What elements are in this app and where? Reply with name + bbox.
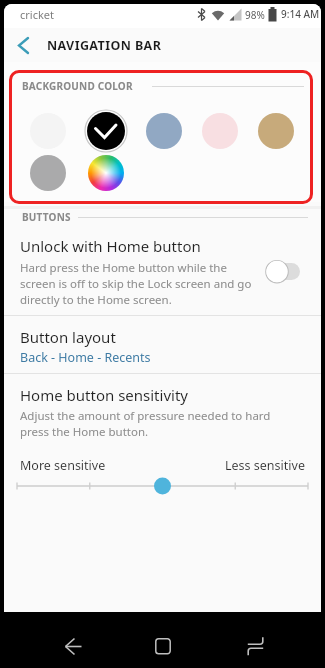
- button[interactable]: [88, 155, 124, 191]
- button[interactable]: [4, 316, 321, 373]
- staticText: Button layout: [20, 327, 116, 347]
- button[interactable]: [141, 626, 185, 666]
- button[interactable]: [84, 109, 128, 153]
- button[interactable]: [233, 626, 277, 666]
- staticText: cricket: [20, 7, 54, 22]
- button[interactable]: [146, 113, 182, 149]
- staticText: Hard press the Home button while the: [20, 260, 227, 276]
- button[interactable]: [202, 113, 238, 149]
- staticText: BUTTONS: [22, 210, 71, 224]
- staticText: Home button sensitivity: [20, 385, 188, 405]
- staticText: Unlock with Home button: [20, 236, 201, 256]
- staticText: Adjust the amount of pressure needed to …: [20, 408, 271, 424]
- staticText: Back - Home - Recents: [20, 349, 151, 366]
- staticText: Less sensitive: [225, 457, 305, 474]
- staticText: More sensitive: [20, 457, 106, 474]
- button[interactable]: [0, 472, 325, 500]
- button[interactable]: [8, 32, 38, 58]
- staticText: 98%: [245, 8, 265, 22]
- staticText: press the Home button.: [20, 424, 149, 440]
- button[interactable]: [51, 626, 95, 666]
- staticText: directly to the Home screen.: [20, 292, 172, 308]
- button[interactable]: [30, 113, 66, 149]
- button[interactable]: [262, 256, 306, 287]
- staticText: NAVIGATION BAR: [47, 37, 162, 54]
- button[interactable]: [30, 155, 66, 191]
- staticText: 9:14 AM: [281, 7, 320, 21]
- staticText: screen is off to skip the Lock screen an…: [20, 276, 252, 292]
- button[interactable]: [258, 113, 294, 149]
- button[interactable]: [4, 226, 321, 310]
- staticText: BACKGROUND COLOR: [22, 79, 133, 93]
